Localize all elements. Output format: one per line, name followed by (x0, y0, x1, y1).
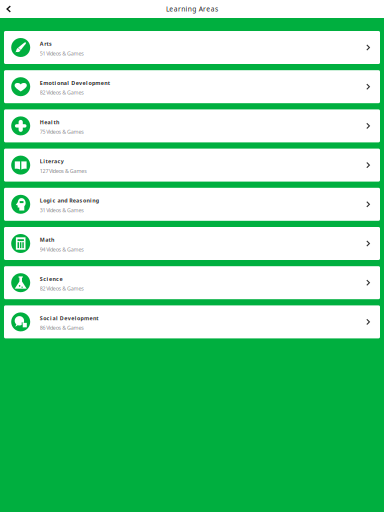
staticText: 127 Videos & Games (40, 167, 87, 174)
button[interactable]: Emotional Development (4, 70, 380, 103)
staticText: Math (40, 236, 54, 243)
staticText: Logic and Reasoning (40, 197, 99, 204)
button[interactable]: Math (4, 227, 380, 260)
staticText: 75 Videos & Games (40, 128, 84, 135)
staticText: Health (40, 118, 59, 126)
staticText: Social Development (40, 314, 98, 322)
staticText: Arts (40, 40, 52, 47)
staticText: Science (40, 275, 62, 282)
button[interactable]: Back (0, 0, 18, 18)
button[interactable]: Science (4, 266, 380, 299)
button[interactable]: Logic and Reasoning (4, 188, 380, 221)
button[interactable]: Health (4, 109, 380, 142)
staticText: 94 Videos & Games (40, 246, 84, 253)
staticText: Emotional Development (40, 79, 110, 86)
staticText: Learning Areas (166, 5, 218, 13)
button[interactable]: Arts (4, 31, 380, 64)
staticText: Literacy (40, 158, 64, 165)
staticText: 86 Videos & Games (40, 324, 84, 331)
staticText: 82 Videos & Games (40, 285, 84, 292)
button[interactable]: Social Development (4, 305, 380, 338)
staticText: 51 Videos & Games (40, 50, 84, 57)
staticText: 82 Videos & Games (40, 89, 84, 96)
staticText: 31 Videos & Games (40, 207, 84, 214)
button[interactable]: Literacy (4, 149, 380, 182)
